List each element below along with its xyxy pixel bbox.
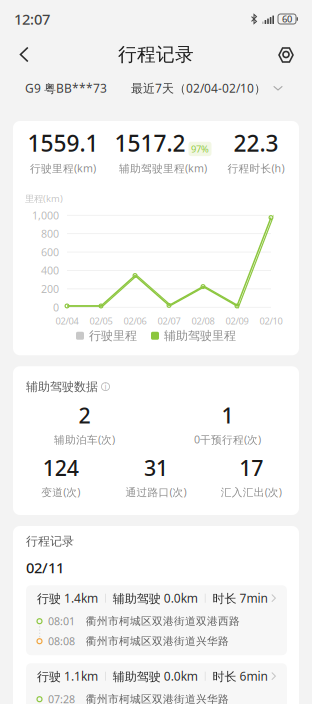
staticText: 辅助驾驶 0.0km: [113, 668, 198, 684]
staticText: 22.3: [233, 128, 278, 158]
staticText: 17: [239, 453, 263, 482]
staticText: 辅助泊车(次): [54, 432, 115, 446]
staticText: 行驶 1.1km: [37, 668, 98, 684]
staticText: 1517.2: [114, 128, 185, 158]
staticText: 12:07: [14, 9, 50, 29]
staticText: 辅助驾驶 0.0km: [113, 590, 198, 606]
staticText: 汇入汇出(次): [221, 485, 282, 499]
staticText: 800: [41, 227, 59, 241]
staticText: 02/10: [259, 315, 282, 327]
staticText: 辅助驾驶里程: [164, 328, 236, 343]
staticText: 辅助驾驶数据: [26, 379, 98, 394]
staticText: 1: [221, 401, 233, 429]
staticText: 变道(次): [41, 485, 80, 499]
staticText: 通过路口(次): [125, 485, 186, 499]
staticText: 行程记录: [26, 534, 74, 549]
staticText: 最近7天（02/04-02/10）: [131, 80, 266, 96]
staticText: 辅助驾驶里程(km): [119, 161, 207, 175]
staticText: 时长 7min: [213, 590, 268, 606]
staticText: 02/04: [55, 315, 78, 327]
staticText: 1,000: [32, 208, 59, 222]
staticText: 200: [41, 282, 59, 296]
staticText: 02/09: [225, 315, 248, 327]
staticText: 02/07: [157, 315, 180, 327]
button[interactable]: 行驶 1.4km: [26, 585, 287, 655]
staticText: 400: [41, 263, 59, 278]
staticText: 行程时长(h): [227, 161, 284, 175]
staticText: 02/08: [191, 315, 214, 327]
staticText: 07:28: [48, 692, 75, 704]
staticText: 行驶里程: [89, 328, 137, 343]
button[interactable]: 行驶 1.1km: [26, 663, 287, 704]
staticText: 行程记录: [118, 43, 194, 66]
staticText: 里程(km): [25, 192, 63, 205]
staticText: 08:08: [48, 634, 75, 648]
staticText: 0: [53, 300, 59, 314]
button[interactable]: Settings: [268, 37, 308, 71]
staticText: G9 粤BB***73: [25, 80, 107, 96]
staticText: 衢州市柯城区双港街道双港西路: [86, 615, 240, 628]
staticText: 124: [43, 453, 79, 482]
button[interactable]: Back: [4, 37, 39, 71]
staticText: 0干预行程(次): [194, 432, 261, 446]
staticText: 衢州市柯城区双港街道兴华路: [86, 635, 229, 648]
button[interactable]: 最近7天（02/04-02/10）: [131, 75, 283, 101]
staticText: 行驶里程(km): [30, 161, 96, 175]
staticText: 1559.1: [27, 128, 98, 158]
staticText: 2: [78, 401, 90, 429]
staticText: 行驶 1.4km: [37, 590, 98, 606]
staticText: 02/11: [26, 558, 64, 577]
staticText: 97%: [191, 143, 209, 155]
staticText: 600: [41, 245, 59, 259]
staticText: 02/05: [89, 315, 112, 327]
staticText: i: [104, 381, 106, 392]
staticText: 60: [282, 13, 292, 25]
staticText: 时长 6min: [213, 668, 268, 684]
button[interactable]: G9 粤BB***73: [25, 75, 107, 101]
staticText: 02/06: [123, 315, 146, 327]
staticText: 08:01: [48, 614, 75, 628]
staticText: 31: [144, 453, 168, 482]
staticText: 衢州市柯城区双港街道兴华路: [86, 693, 229, 704]
